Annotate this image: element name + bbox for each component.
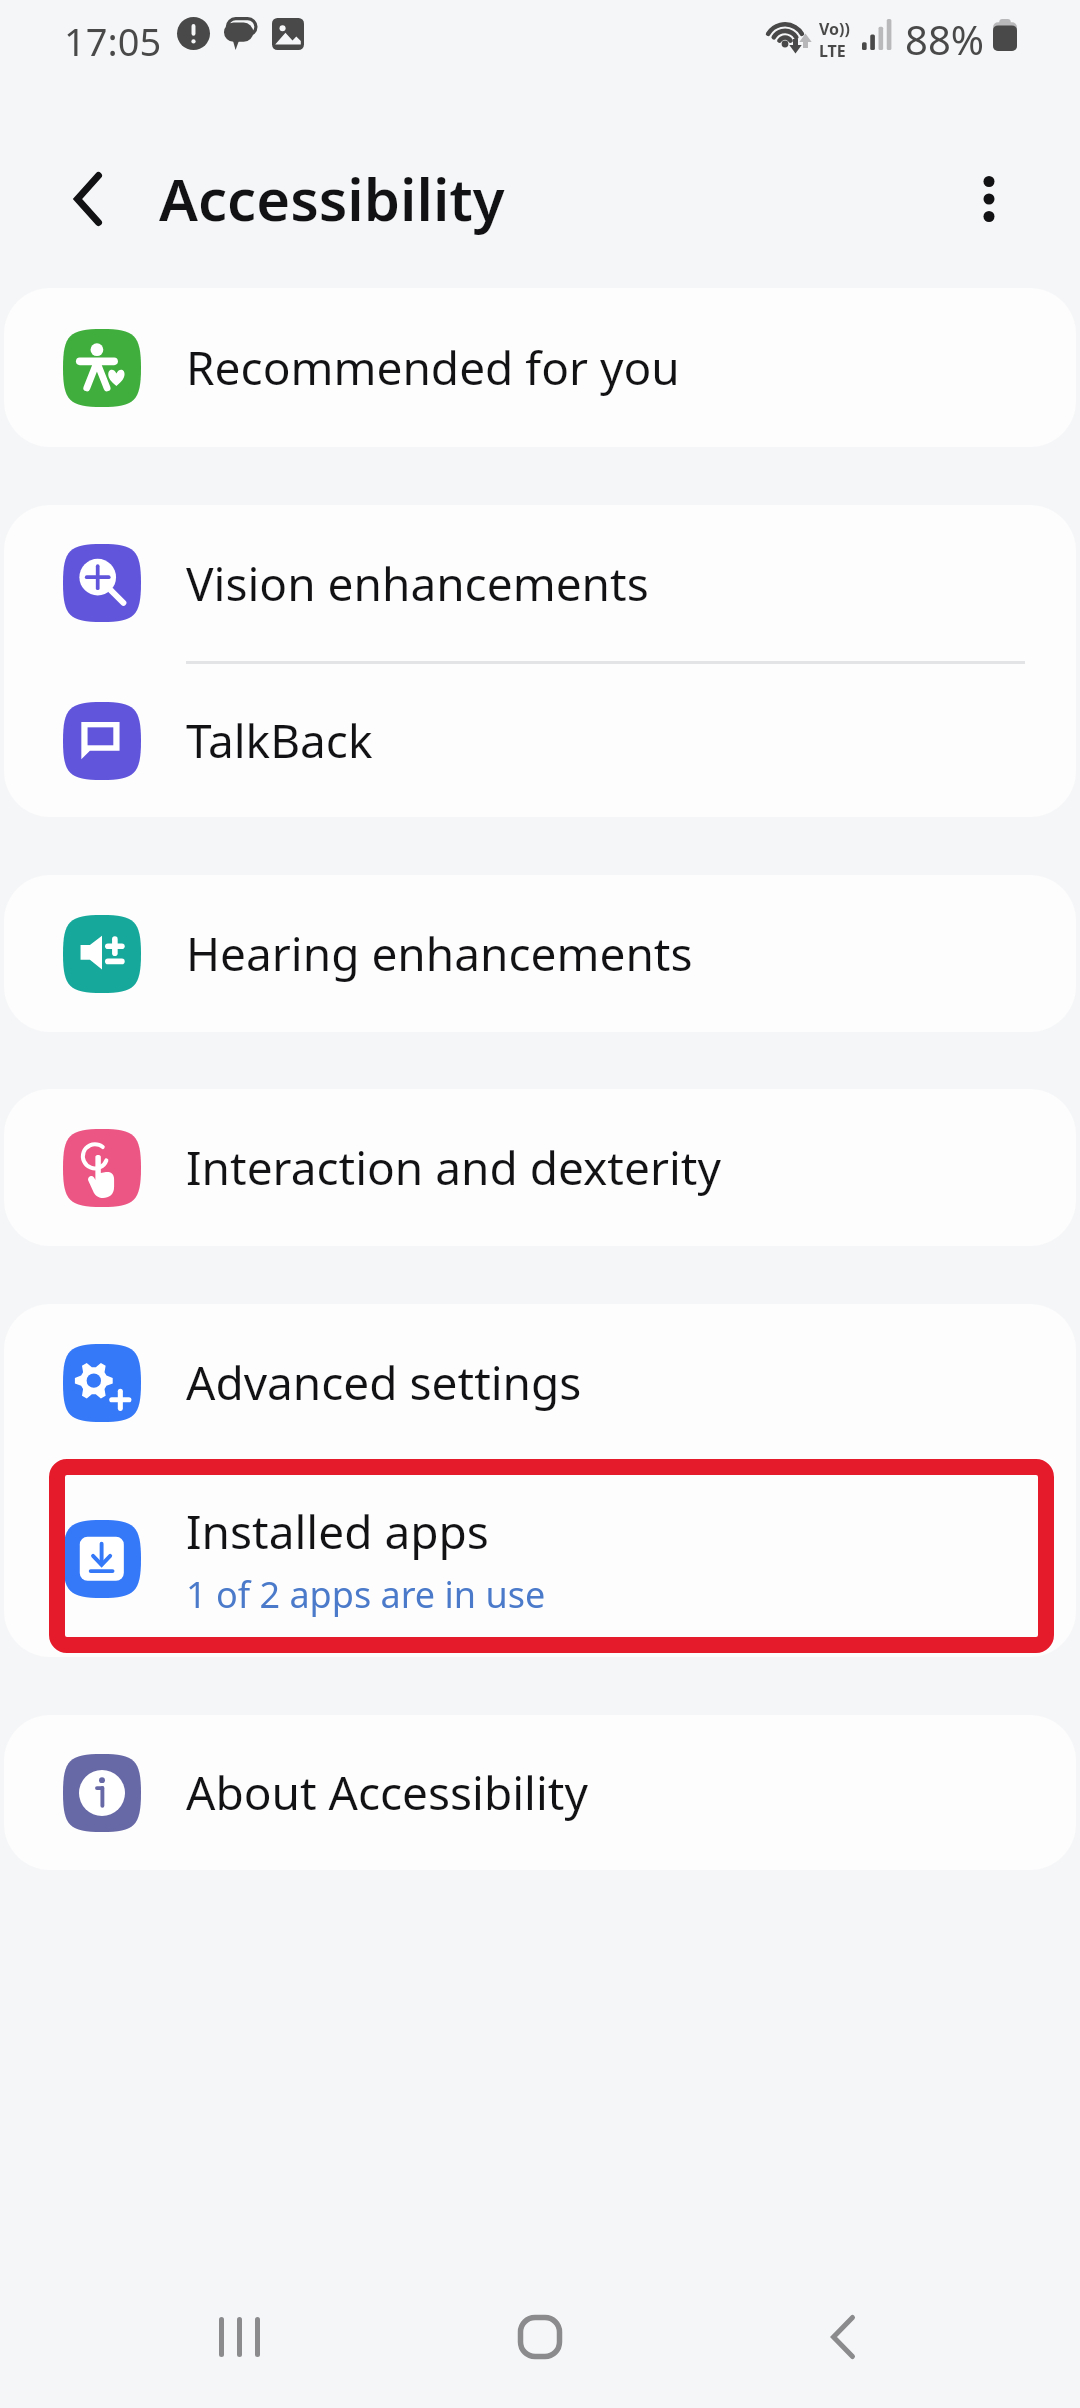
button[interactable]: Home (470, 2282, 610, 2392)
staticText: Vo)) (819, 18, 850, 40)
staticText: Recommended for you (186, 336, 680, 399)
button[interactable]: Advanced settings (4, 1304, 1076, 1461)
staticText: 1 of 2 apps are in use (186, 1570, 546, 1619)
staticText: LTE (819, 40, 846, 62)
button[interactable]: About Accessibility (4, 1715, 1076, 1870)
staticText: About Accessibility (186, 1761, 588, 1824)
button[interactable]: Installed apps (4, 1461, 1076, 1657)
button[interactable]: More options (950, 160, 1028, 238)
staticText: Advanced settings (186, 1351, 582, 1414)
staticText: Interaction and dexterity (186, 1136, 721, 1199)
staticText: TalkBack (186, 709, 373, 772)
button[interactable]: Vision enhancements (4, 505, 1076, 661)
button[interactable]: Interaction and dexterity (4, 1089, 1076, 1246)
staticText: 88% (905, 12, 984, 66)
button[interactable]: Recommended for you (4, 288, 1076, 447)
button[interactable]: TalkBack (4, 664, 1076, 817)
button[interactable]: Back (773, 2282, 913, 2392)
button[interactable]: Navigate up (49, 160, 127, 238)
staticText: 17:05 (64, 15, 162, 67)
staticText: Accessibility (159, 159, 505, 238)
button[interactable]: Hearing enhancements (4, 875, 1076, 1032)
staticText: Vision enhancements (186, 552, 649, 615)
staticText: Installed apps (186, 1500, 489, 1563)
staticText: Hearing enhancements (186, 922, 693, 985)
button[interactable]: Recents (169, 2282, 309, 2392)
